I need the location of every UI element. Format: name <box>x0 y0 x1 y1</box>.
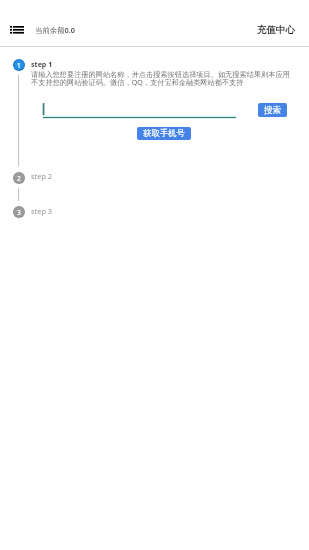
staticText: step 2 <box>31 171 53 181</box>
button[interactable]: Menu <box>2 16 32 44</box>
staticText: 当前余额0.0 <box>35 25 76 35</box>
staticText: 获取手机号 <box>143 128 185 139</box>
button[interactable]: 获取手机号 <box>137 127 191 140</box>
button[interactable]: 充值中心 <box>242 16 309 44</box>
staticText: 充值中心 <box>257 24 295 36</box>
staticText: 3 <box>17 208 21 217</box>
staticText: 2 <box>17 174 21 183</box>
staticText: 请输入您想要注册的网站名称，并点击搜索按钮选择项目。如无搜索结果则本应用不支持您… <box>31 70 295 88</box>
staticText: 搜索 <box>264 105 282 116</box>
staticText: step 3 <box>31 206 53 216</box>
staticText: 1 <box>17 61 21 70</box>
staticText: step 1 <box>31 59 53 69</box>
button[interactable]: Website name input <box>42 100 237 119</box>
button[interactable]: 搜索 <box>258 103 287 117</box>
